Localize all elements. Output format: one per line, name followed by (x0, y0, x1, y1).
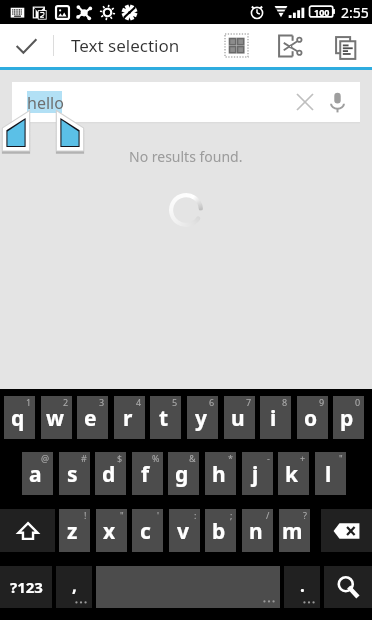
button[interactable]: @ (22, 452, 53, 495)
button[interactable]: 2 (41, 396, 72, 439)
staticText: 7 (246, 396, 252, 408)
staticText: s (67, 460, 78, 489)
staticText: 3 (99, 396, 105, 408)
staticText: c (140, 517, 151, 546)
staticText: j (252, 460, 259, 489)
staticText: Text selection (71, 34, 180, 57)
button[interactable]: # (59, 452, 90, 495)
staticText: : (194, 509, 197, 521)
staticText: ' (157, 509, 160, 521)
staticText: $ (117, 452, 123, 464)
staticText: hello (27, 92, 64, 114)
staticText: ; (230, 509, 233, 521)
staticText: . (300, 574, 305, 597)
staticText: v (177, 517, 189, 546)
button[interactable]: . (284, 566, 320, 608)
button[interactable]: 7 (224, 396, 255, 439)
staticText: 8 (282, 396, 288, 408)
staticText: l (325, 460, 332, 489)
staticText: g (175, 460, 189, 489)
staticText: / (266, 509, 270, 521)
staticText: k (285, 460, 299, 489)
button[interactable]: ; (205, 509, 236, 552)
button[interactable]: % (132, 452, 163, 495)
staticText: @ (41, 452, 50, 464)
button[interactable]: 4 (114, 396, 145, 439)
staticText: m (282, 517, 303, 546)
staticText: f (141, 460, 150, 489)
staticText: 100 (314, 6, 330, 18)
button[interactable]: & (168, 452, 199, 495)
button[interactable]: 9 (297, 396, 328, 439)
button[interactable]: 1 (4, 396, 35, 439)
staticText: 2:55 (341, 3, 369, 22)
button[interactable]: " (96, 509, 127, 552)
staticText: 1 (26, 396, 32, 408)
staticText: " (120, 509, 124, 521)
staticText: ? (303, 509, 307, 521)
staticText: x (103, 517, 116, 546)
staticText: No results found. (129, 147, 243, 166)
button[interactable]: 5 (150, 396, 181, 439)
staticText: z (67, 517, 78, 546)
staticText: + (300, 452, 306, 464)
button[interactable]: Voice search (318, 82, 356, 122)
button[interactable]: Copy (324, 24, 368, 67)
staticText: e (84, 404, 97, 433)
button[interactable]: / (242, 509, 273, 552)
button[interactable]: - (242, 452, 273, 495)
button[interactable]: 3 (77, 396, 108, 439)
staticText: t (159, 404, 169, 433)
button[interactable]: * (205, 452, 236, 495)
button[interactable]: 6 (187, 396, 218, 439)
staticText: ?123 (10, 577, 43, 597)
button[interactable]: ! (59, 509, 90, 552)
staticText: b (212, 517, 226, 546)
staticText: - (267, 452, 270, 464)
staticText: u (231, 404, 245, 433)
button[interactable]: hello (12, 82, 360, 122)
staticText: ! (84, 509, 87, 521)
button[interactable]: : (169, 509, 200, 552)
staticText: 0 (355, 396, 361, 408)
staticText: 6 (209, 396, 215, 408)
staticText: h (212, 460, 226, 489)
staticText: o (304, 404, 318, 433)
button[interactable]: Done (0, 24, 52, 67)
button[interactable]: Shift (0, 509, 55, 552)
staticText: r (123, 404, 133, 433)
button[interactable]: " (315, 452, 346, 495)
button[interactable]: Select all (214, 24, 258, 67)
button[interactable]: , (56, 566, 92, 608)
staticText: " (339, 452, 343, 464)
staticText: i (270, 404, 277, 433)
button[interactable]: $ (95, 452, 126, 495)
staticText: & (189, 452, 196, 464)
staticText: p (340, 404, 354, 433)
staticText: * (228, 452, 233, 464)
staticText: 5 (172, 396, 178, 408)
staticText: q (11, 404, 25, 433)
button[interactable]: 0 (333, 396, 364, 439)
button[interactable]: Clear query (286, 82, 324, 122)
staticText: y (195, 404, 207, 433)
button[interactable]: ? (279, 509, 310, 552)
staticText: 2 (63, 396, 69, 408)
staticText: % (152, 452, 160, 464)
button[interactable]: Cut (268, 24, 312, 67)
button[interactable]: ' (132, 509, 163, 552)
button[interactable]: Search (324, 566, 372, 608)
button[interactable]: ?123 (0, 566, 52, 608)
staticText: a (29, 460, 42, 489)
staticText: 9 (319, 396, 325, 408)
button[interactable]: Backspace (321, 509, 372, 552)
button[interactable]: 8 (260, 396, 291, 439)
staticText: w (46, 404, 64, 433)
staticText: d (102, 460, 116, 489)
staticText: # (81, 452, 87, 464)
staticText: 4 (136, 396, 142, 408)
button[interactable]: + (278, 452, 309, 495)
staticText: , (72, 574, 77, 597)
staticText: n (249, 517, 263, 546)
